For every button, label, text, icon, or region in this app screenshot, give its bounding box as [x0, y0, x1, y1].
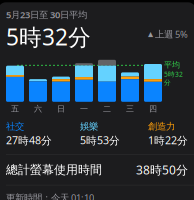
staticText: 5時32分: [6, 22, 91, 52]
staticText: 平均: [164, 60, 180, 70]
button[interactable]: 總計螢幕使用時間: [0, 155, 194, 185]
staticText: 38時50分: [136, 162, 188, 178]
staticText: 1時22分: [148, 133, 188, 147]
staticText: 三: [126, 104, 134, 114]
staticText: 日: [57, 104, 65, 114]
staticText: 創造力: [148, 121, 175, 132]
staticText: 5時53分: [80, 133, 120, 147]
staticText: 娛樂: [80, 121, 98, 132]
staticText: 五: [11, 104, 19, 114]
staticText: 四: [149, 104, 157, 114]
staticText: 總計螢幕使用時間: [6, 162, 102, 177]
staticText: 一: [80, 104, 88, 114]
staticText: 5月23日至 30日平均: [6, 8, 87, 21]
staticText: 六: [34, 104, 42, 114]
staticText: 上週 5%: [155, 28, 188, 40]
staticText: 二: [103, 104, 111, 114]
staticText: 5時32分: [164, 70, 183, 87]
staticText: 27時48分: [6, 133, 52, 147]
staticText: 更新時間：今天 01:10: [6, 191, 94, 200]
staticText: 社交: [6, 121, 24, 132]
staticText: ▲: [148, 30, 153, 38]
